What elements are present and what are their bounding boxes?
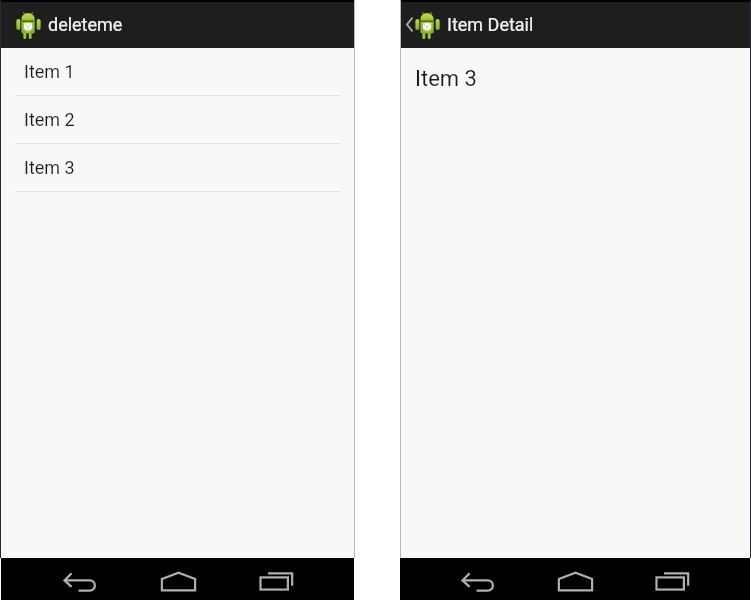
- staticText: Item Detail: [447, 14, 534, 35]
- staticText: Item 2: [24, 109, 75, 130]
- staticText: deleteme: [48, 14, 123, 35]
- button[interactable]: Navigate up: [400, 2, 414, 48]
- button[interactable]: Back: [429, 558, 527, 600]
- button[interactable]: Recents: [624, 558, 721, 600]
- button[interactable]: Home: [527, 558, 624, 600]
- button[interactable]: Item 1: [1, 48, 354, 96]
- button[interactable]: Item 2: [1, 96, 354, 144]
- staticText: Item 3: [24, 157, 75, 178]
- staticText: Item 3: [415, 66, 477, 92]
- staticText: Item 1: [24, 61, 75, 82]
- button[interactable]: Back: [30, 558, 129, 600]
- button[interactable]: Item 3: [1, 144, 354, 192]
- button[interactable]: Home: [129, 558, 227, 600]
- button[interactable]: Recents: [227, 558, 325, 600]
